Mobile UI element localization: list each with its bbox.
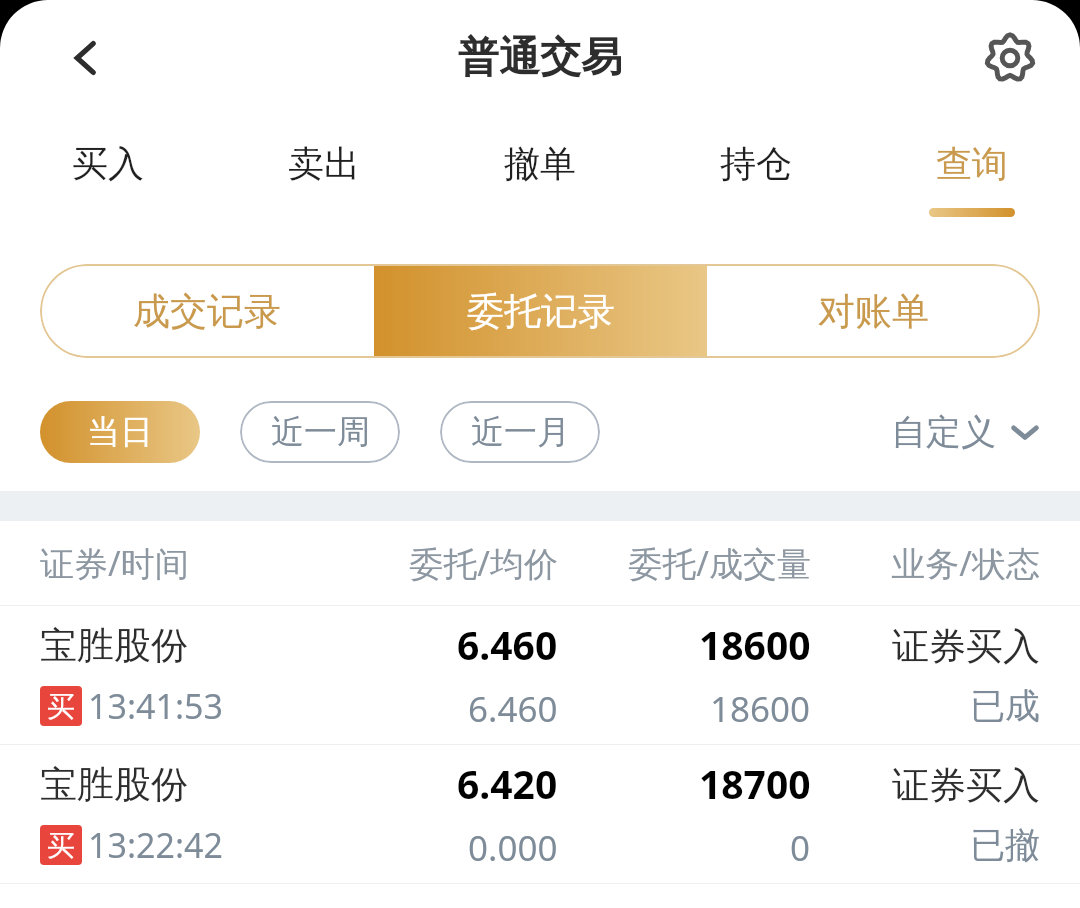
staticText: 查询 [936, 141, 1008, 186]
button[interactable]: 宝胜股份 [0, 606, 1080, 744]
button[interactable]: Back [48, 20, 124, 96]
button[interactable]: 持仓 [648, 115, 864, 248]
staticText: 已撤 [970, 823, 1040, 867]
staticText: 买入 [72, 141, 144, 186]
staticText: 成交记录 [133, 288, 281, 335]
button[interactable]: 委托记录 [374, 264, 707, 358]
button[interactable]: 撤单 [432, 115, 648, 248]
button[interactable]: 近一周 [240, 401, 400, 463]
staticText: 6.420 [457, 757, 558, 810]
staticText: 买 [47, 828, 75, 863]
staticText: 撤单 [504, 141, 576, 186]
staticText: 13:41:53 [88, 683, 223, 729]
staticText: 6.460 [457, 618, 558, 671]
button[interactable]: 查询 [864, 115, 1080, 248]
staticText: 持仓 [720, 141, 792, 186]
button[interactable]: Settings [972, 20, 1048, 96]
staticText: 买 [47, 689, 75, 724]
button[interactable]: 卖出 [216, 115, 432, 248]
staticText: 18600 [710, 685, 811, 733]
staticText: 宝胜股份 [40, 622, 188, 669]
staticText: 业务/状态 [811, 540, 1040, 586]
staticText: 自定义 [891, 410, 996, 454]
staticText: 证券/时间 [40, 540, 317, 586]
button[interactable]: 成交记录 [40, 264, 374, 358]
button[interactable]: 买入 [0, 115, 216, 248]
staticText: 已成 [970, 684, 1040, 728]
button[interactable]: 当日 [40, 401, 200, 463]
staticText: 证券买入 [892, 762, 1040, 809]
button[interactable]: 宝胜股份 [0, 745, 1080, 883]
staticText: 近一月 [471, 411, 570, 453]
staticText: 当日 [87, 411, 153, 453]
button[interactable]: 自定义 [891, 410, 1040, 454]
staticText: 卖出 [288, 141, 360, 186]
staticText: 18700 [699, 757, 811, 810]
button[interactable]: 对账单 [707, 264, 1040, 358]
staticText: 证券买入 [892, 623, 1040, 670]
staticText: 宝胜股份 [40, 761, 188, 808]
staticText: 13:22:42 [88, 822, 223, 868]
button[interactable]: 近一月 [440, 401, 600, 463]
staticText: 0 [790, 824, 811, 872]
staticText: 委托记录 [467, 288, 615, 335]
staticText: 对账单 [818, 288, 929, 335]
staticText: 6.460 [468, 685, 558, 733]
staticText: 0.000 [468, 824, 558, 872]
staticText: 18600 [699, 618, 811, 671]
staticText: 普通交易 [458, 32, 622, 84]
staticText: 委托/成交量 [558, 540, 811, 586]
staticText: 委托/均价 [317, 540, 558, 586]
staticText: 近一周 [271, 411, 370, 453]
